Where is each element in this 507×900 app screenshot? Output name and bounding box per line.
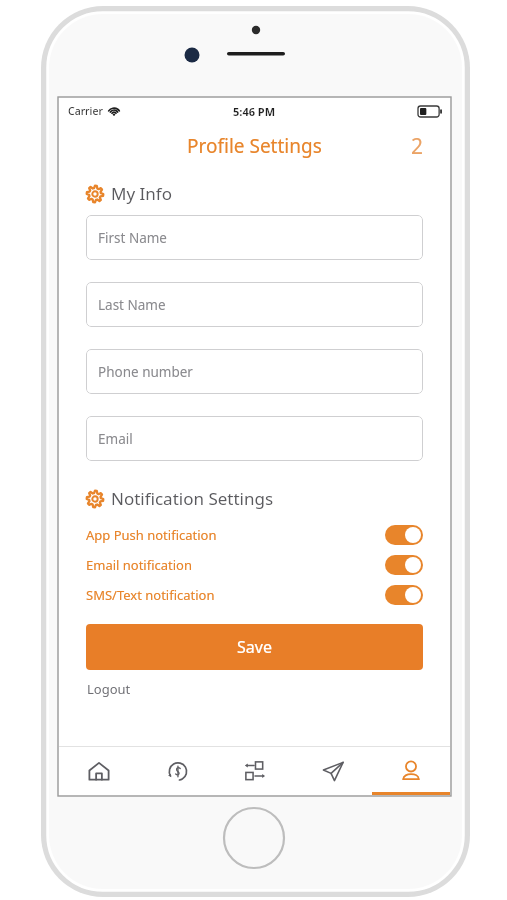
staticText: Email notification	[86, 556, 193, 574]
button[interactable]: Profile	[372, 747, 450, 795]
staticText: Profile Settings	[187, 133, 322, 159]
button[interactable]: Transfer	[216, 747, 294, 795]
button[interactable]: Home	[59, 747, 138, 795]
staticText: Email	[98, 430, 133, 448]
button[interactable]: Last Name	[86, 282, 423, 327]
button[interactable]: 2	[411, 132, 424, 161]
button[interactable]: SMS/Text notification	[86, 580, 423, 610]
staticText: Carrier	[68, 104, 103, 118]
staticText: SMS/Text notification	[86, 586, 215, 604]
staticText: My Info	[111, 182, 172, 205]
staticText: Save	[237, 636, 272, 658]
button[interactable]: First Name	[86, 215, 423, 260]
button[interactable]: Logout	[87, 680, 131, 698]
staticText: Notification Settings	[111, 487, 274, 510]
button[interactable]: Phone number	[86, 349, 423, 394]
staticText: 5:46 PM	[233, 104, 276, 119]
staticText: Last Name	[98, 296, 166, 314]
button[interactable]: App Push notification	[86, 520, 423, 550]
button[interactable]: Email	[86, 416, 423, 461]
staticText: First Name	[98, 229, 167, 247]
button[interactable]: Payments	[138, 747, 216, 795]
button[interactable]: Send	[294, 747, 372, 795]
button[interactable]: Email notification	[86, 550, 423, 580]
staticText: Phone number	[98, 363, 193, 381]
staticText: App Push notification	[86, 526, 217, 544]
button[interactable]: Save	[86, 624, 423, 670]
